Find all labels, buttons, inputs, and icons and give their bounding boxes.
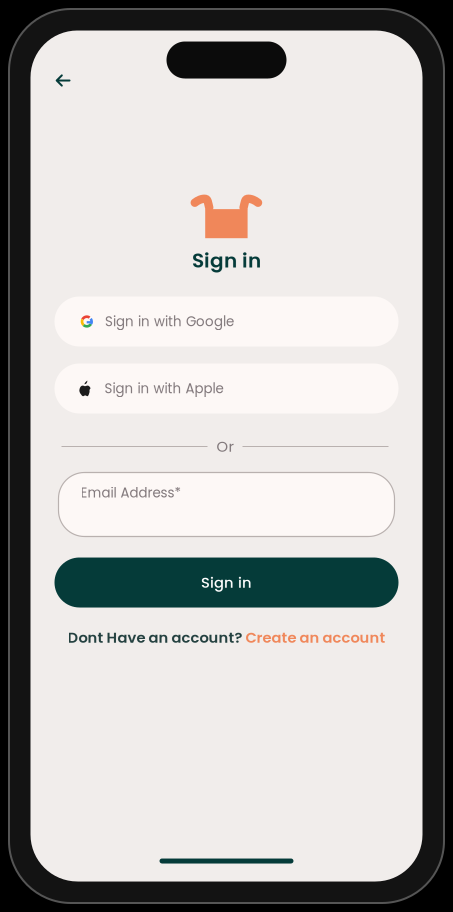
staticText: Create an account [245,627,385,648]
button[interactable]: Sign in with Apple [54,363,398,413]
staticText: Or [216,436,233,457]
staticText: Sign in [192,246,261,274]
button[interactable]: Sign in with Google [54,296,398,346]
staticText: Sign in [201,572,252,593]
staticText: Email Address* [80,483,180,502]
button[interactable]: Back [43,62,82,98]
button[interactable]: Sign in [54,557,398,607]
staticText: Sign in with Apple [104,379,223,398]
staticText: Dont Have an account? [67,627,242,648]
button[interactable]: Create an account [245,627,385,648]
staticText: Sign in with Google [105,312,234,331]
